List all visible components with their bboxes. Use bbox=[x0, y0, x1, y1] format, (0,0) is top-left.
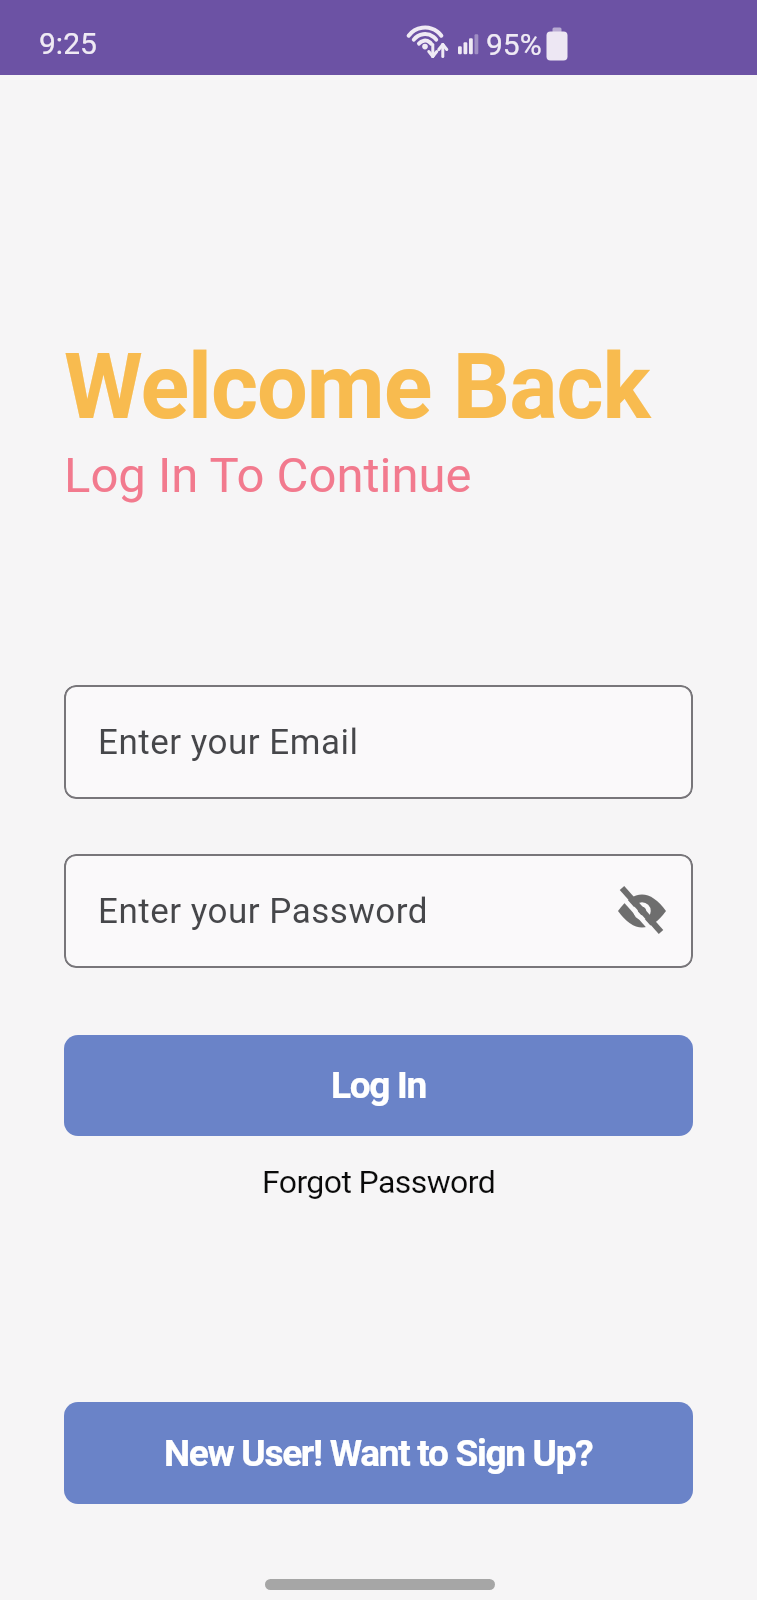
staticText: 95% bbox=[486, 27, 542, 62]
staticText: Enter your Email bbox=[98, 722, 359, 763]
button[interactable]: New User! Want to Sign Up? bbox=[64, 1402, 693, 1504]
button[interactable]: Forgot Password bbox=[262, 1163, 496, 1201]
staticText: New User! Want to Sign Up? bbox=[164, 1432, 593, 1475]
button[interactable]: Enter your Email bbox=[64, 685, 693, 799]
staticText: Welcome Back bbox=[64, 335, 650, 440]
button[interactable]: Enter your Password bbox=[64, 854, 693, 968]
staticText: Log In To Continue bbox=[64, 447, 472, 504]
button[interactable] bbox=[618, 887, 666, 935]
button[interactable]: Log In bbox=[64, 1035, 693, 1136]
staticText: Enter your Password bbox=[98, 891, 428, 932]
staticText: Log In bbox=[331, 1064, 427, 1107]
staticText: 9:25 bbox=[39, 26, 97, 61]
